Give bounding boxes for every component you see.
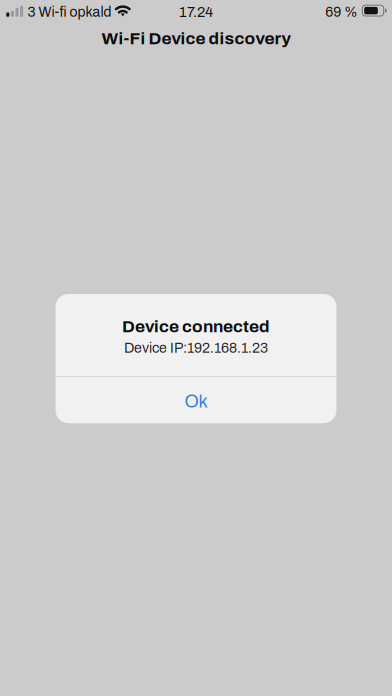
staticText: Device IP:192.168.1.23 [124, 340, 268, 356]
button[interactable]: Ok [55, 377, 336, 423]
staticText: 69 % [325, 4, 357, 20]
staticText: Wi-Fi Device discovery [101, 29, 290, 48]
staticText: 17.24 [179, 4, 213, 20]
staticText: 3 Wi-fi opkald [27, 4, 111, 20]
staticText: Ok [184, 392, 207, 411]
staticText: Device connected [122, 317, 270, 336]
